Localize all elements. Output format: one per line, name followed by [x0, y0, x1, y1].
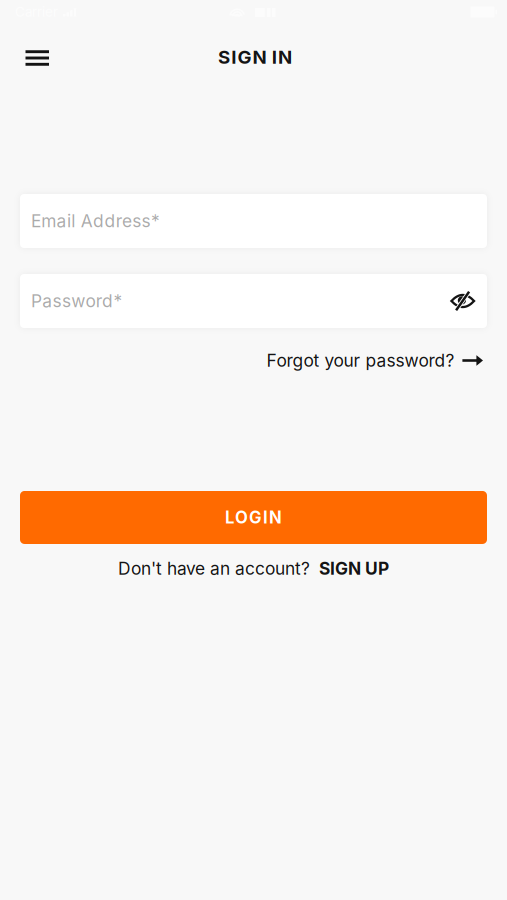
staticText: I — [263, 507, 268, 528]
button[interactable]: Don't have an account? — [118, 555, 389, 582]
staticText: N — [253, 46, 267, 68]
staticText: N — [278, 46, 292, 68]
staticText: G — [249, 507, 262, 528]
staticText: Don't have an account? — [118, 558, 310, 579]
button[interactable]: Forgot your password? — [266, 346, 483, 375]
staticText: Email Address* — [31, 210, 160, 231]
staticText: Password* — [31, 290, 122, 311]
staticText: SIGN UP — [319, 558, 389, 579]
button[interactable]: L — [20, 491, 487, 544]
staticText: Forgot your password? — [266, 350, 454, 371]
staticText: G — [237, 46, 251, 68]
staticText: L — [225, 507, 234, 528]
button[interactable]: Menu — [13, 39, 61, 77]
staticText: O — [235, 507, 248, 528]
staticText: S — [218, 46, 230, 68]
button[interactable]: Show password — [440, 285, 475, 316]
staticText: I — [231, 46, 236, 68]
staticText: I — [272, 46, 277, 68]
staticText: N — [269, 507, 282, 528]
